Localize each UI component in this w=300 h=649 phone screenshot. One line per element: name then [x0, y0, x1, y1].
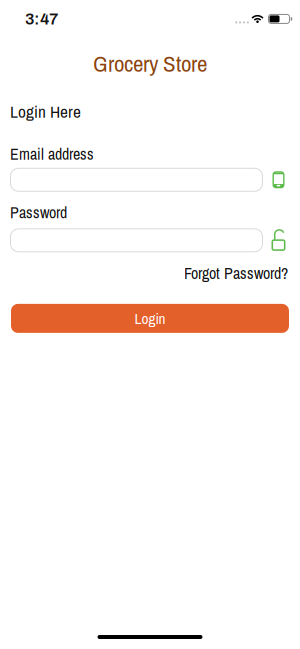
staticText: Grocery Store [93, 48, 207, 79]
button[interactable]: Login [11, 304, 289, 333]
staticText: 3:47 [25, 10, 58, 28]
staticText: Email address [10, 143, 94, 165]
staticText: Forgot Password? [184, 262, 288, 284]
staticText: Login [134, 308, 165, 329]
staticText: Login Here [10, 100, 81, 123]
staticText: Password [10, 202, 67, 223]
button[interactable]: Forgot Password? [184, 262, 288, 284]
